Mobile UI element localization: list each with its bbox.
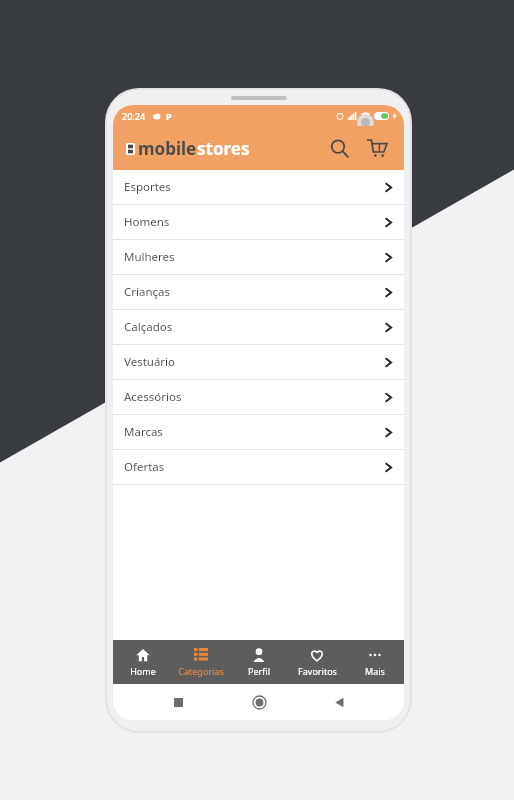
staticText: Esportes xyxy=(124,179,171,195)
staticText: Mulheres xyxy=(124,249,175,265)
button[interactable]: Marcas xyxy=(113,415,404,449)
staticText: Calçados xyxy=(124,319,173,335)
button[interactable]: Search xyxy=(322,131,356,165)
button[interactable]: Mulheres xyxy=(113,240,404,274)
button[interactable]: Home xyxy=(244,687,274,717)
staticText: Marcas xyxy=(124,424,163,440)
staticText: Ofertas xyxy=(124,459,165,475)
button[interactable]: Homens xyxy=(113,205,404,239)
button[interactable]: Mais xyxy=(346,640,404,684)
staticText: Homens xyxy=(124,214,170,230)
staticText: Home xyxy=(130,665,156,677)
button[interactable]: Back xyxy=(324,687,354,717)
staticText: mobile xyxy=(138,137,197,160)
staticText: Crianças xyxy=(124,284,171,300)
button[interactable]: Ofertas xyxy=(113,450,404,484)
staticText: Favoritos xyxy=(298,665,337,677)
staticText: Vestuário xyxy=(124,354,176,370)
button[interactable]: Perfil xyxy=(230,640,288,684)
button[interactable]: Vestuário xyxy=(113,345,404,379)
button[interactable]: Esportes xyxy=(113,170,404,204)
button[interactable]: Calçados xyxy=(113,310,404,344)
button[interactable]: Crianças xyxy=(113,275,404,309)
staticText: Perfil xyxy=(248,665,270,677)
button[interactable]: Home xyxy=(113,640,172,684)
button[interactable]: Categorias xyxy=(172,640,230,684)
button[interactable]: Cart xyxy=(360,131,394,165)
button[interactable]: Acessórios xyxy=(113,380,404,414)
staticText: Categorias xyxy=(178,665,224,677)
button[interactable]: Favoritos xyxy=(288,640,346,684)
button[interactable]: Recents xyxy=(163,687,193,717)
staticText: Mais xyxy=(365,665,385,677)
staticText: P xyxy=(166,110,172,122)
staticText: 20:24 xyxy=(122,110,146,122)
staticText: Acessórios xyxy=(124,389,182,405)
staticText: stores xyxy=(197,137,250,160)
